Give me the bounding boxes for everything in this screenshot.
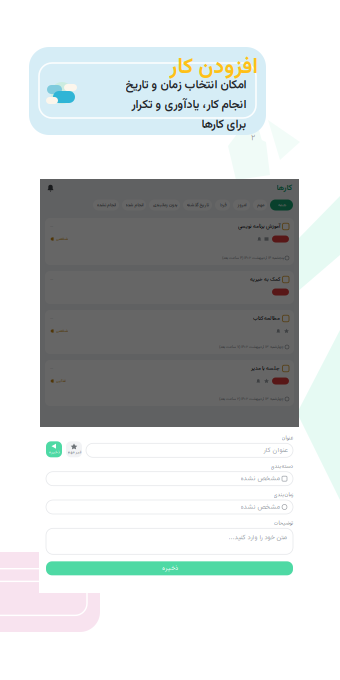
staticText: شخصی <box>55 328 67 334</box>
staticText: افزودن کار <box>169 51 258 84</box>
staticText: مطالعه کتاب <box>252 314 279 323</box>
button[interactable]: فردا <box>215 199 230 210</box>
staticText: همه <box>277 201 285 209</box>
staticText: کارها <box>276 182 292 194</box>
button[interactable]: ··· <box>45 360 294 406</box>
staticText: غذایی <box>55 378 65 384</box>
button[interactable]: مهم <box>253 199 267 210</box>
button[interactable]: امروز <box>233 199 250 210</box>
button[interactable]: عنوان کار <box>86 443 293 457</box>
button[interactable]: ··· <box>45 218 294 265</box>
staticText: انجام کار، یادآوری و تکرار <box>131 96 246 115</box>
staticText: جلسه با مدیر <box>250 364 279 373</box>
staticText: چهارشنبه ۱۳ اردیبهشت ۱۴۰۲ (۲ ساعت بعد) <box>218 396 283 402</box>
staticText: برای کارها <box>201 115 246 134</box>
staticText: امروز <box>237 201 246 209</box>
button[interactable]: متن خود را وارد کنید... <box>46 528 293 554</box>
staticText: تاریخ گذشته <box>186 201 209 209</box>
button[interactable]: ذخیره <box>46 561 293 575</box>
staticText: عنوان کار <box>263 445 287 455</box>
staticText: مهم <box>256 201 263 209</box>
staticText: مشخص نشده <box>240 502 280 512</box>
staticText: امکان انتخاب زمان و تاریخ <box>125 76 246 95</box>
staticText: ۲ <box>251 132 255 144</box>
button[interactable]: ذخیره <box>46 441 62 457</box>
button[interactable]: تاریخ گذشته <box>183 199 212 210</box>
button[interactable]: انجام نشده <box>93 199 119 210</box>
staticText: کمک به خیریه <box>249 275 279 284</box>
staticText: فردا <box>219 201 226 209</box>
staticText: بدون زمانبندی <box>152 201 176 209</box>
staticText: غیر مهم <box>67 449 81 455</box>
staticText: مشخص نشده <box>240 473 280 484</box>
button[interactable]: مشخص نشده <box>46 472 293 486</box>
staticText: شخصی <box>55 236 67 242</box>
staticText: ذخیره <box>48 449 59 455</box>
staticText: انجام شده <box>125 201 143 209</box>
staticText: عنوان <box>281 434 293 442</box>
button[interactable]: غیر مهم <box>66 441 82 457</box>
staticText: انجام نشده <box>96 201 115 209</box>
staticText: پنجشنبه ۱۴ اردیبهشت ۱۴۰۲ (۴ ساعت بعد) <box>221 255 283 261</box>
staticText: توضیحات <box>273 519 293 527</box>
staticText: ذخیره <box>161 563 177 573</box>
button[interactable]: همه <box>270 199 293 210</box>
staticText: زمان‌بندی <box>273 491 293 499</box>
button[interactable]: ··· <box>45 271 294 304</box>
staticText: دسته‌بندی <box>270 462 293 471</box>
button[interactable]: ··· <box>45 310 294 354</box>
button[interactable]: مشخص نشده <box>46 500 293 514</box>
staticText: آموزش برنامه نویسی <box>237 222 279 231</box>
button[interactable]: بدون زمانبندی <box>149 199 180 210</box>
button[interactable]: انجام شده <box>122 199 146 210</box>
staticText: چهارشنبه ۱۳ اردیبهشت ۱۴۰۲ (۷ ساعت بعد) <box>218 344 283 350</box>
staticText: متن خود را وارد کنید... <box>228 532 287 543</box>
